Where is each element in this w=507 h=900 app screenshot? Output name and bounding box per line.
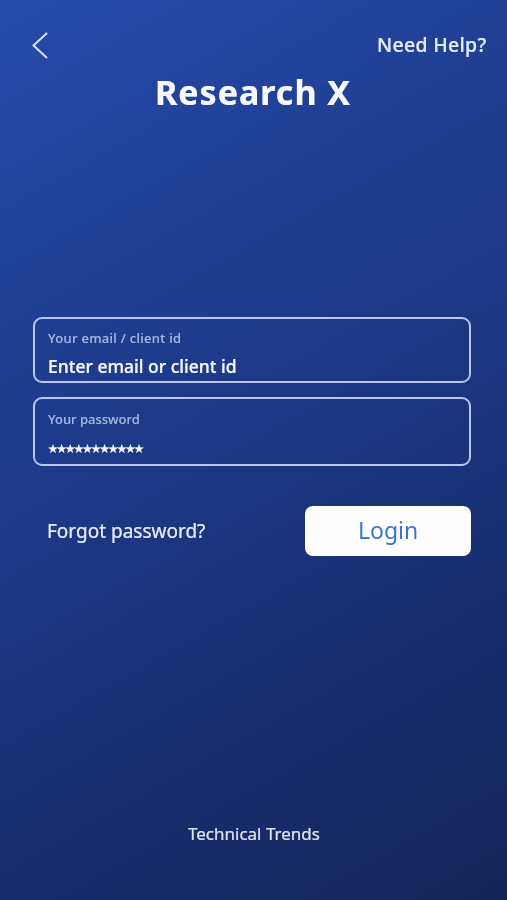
button[interactable]: Login	[305, 506, 471, 556]
staticText: Research X	[155, 69, 352, 115]
staticText: Technical Trends	[188, 822, 320, 845]
staticText: Login	[358, 514, 419, 545]
staticText: Your password	[48, 410, 140, 428]
staticText: Need Help?	[377, 31, 487, 58]
button[interactable]: Forgot password?	[47, 518, 206, 544]
button[interactable]: Need Help?	[369, 25, 495, 64]
staticText: Your email / client id	[48, 329, 182, 347]
staticText: Forgot password?	[47, 518, 206, 544]
button[interactable]: Your email / client id	[33, 317, 471, 383]
staticText: Enter email or client id	[48, 354, 237, 378]
button[interactable]	[22, 26, 58, 64]
button[interactable]: Your password	[33, 397, 471, 466]
